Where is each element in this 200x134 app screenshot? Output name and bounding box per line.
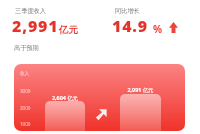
staticText: 1000 (20, 121, 31, 127)
staticText: 三季度收入 (15, 7, 46, 15)
staticText: 同比增长 (115, 7, 140, 15)
staticText: 亿元 (59, 24, 78, 36)
staticText: 收入 (20, 71, 29, 77)
button[interactable]: 收入 (14, 64, 185, 131)
other: Increase (169, 22, 178, 33)
staticText: 高于预期 (14, 44, 39, 52)
staticText: 2,604 亿元 (45, 94, 85, 101)
staticText: % (153, 22, 163, 36)
staticText: 2,991 (12, 15, 59, 37)
staticText: 2000 (20, 105, 31, 111)
staticText: 3000 (20, 88, 31, 94)
staticText: 14.9 (112, 15, 148, 37)
staticText: 2,991 亿元 (120, 86, 161, 93)
